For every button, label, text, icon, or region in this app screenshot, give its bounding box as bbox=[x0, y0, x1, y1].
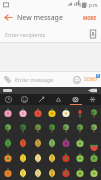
button[interactable]: SEND bbox=[84, 72, 98, 87]
button[interactable]: Emoji bbox=[59, 120, 73, 135]
button[interactable]: Emoji bbox=[30, 135, 45, 150]
button[interactable]: Attach bbox=[0, 72, 15, 87]
button[interactable]: Emoji bbox=[59, 165, 73, 180]
button[interactable]: Emoji bbox=[87, 105, 101, 120]
button[interactable]: Add recipient from contacts bbox=[85, 26, 101, 42]
button[interactable]: Emoji bbox=[73, 165, 87, 180]
staticText: 5:41 p.m. bbox=[79, 2, 99, 8]
button[interactable]: Emoji bbox=[73, 135, 87, 150]
button[interactable]: Emoji bbox=[45, 150, 59, 165]
button[interactable]: Emoji bbox=[59, 105, 73, 120]
button[interactable]: Emoji bbox=[15, 135, 30, 150]
staticText: Enter recipients bbox=[5, 31, 85, 38]
button[interactable]: MORE bbox=[83, 9, 97, 26]
button[interactable]: Emoji bbox=[45, 120, 59, 135]
button[interactable]: Animals bbox=[67, 94, 84, 105]
button[interactable]: Emoji bbox=[0, 105, 15, 120]
button[interactable]: Emoji bbox=[45, 135, 59, 150]
button[interactable]: Emoji bbox=[59, 135, 73, 150]
button[interactable]: Emoji bbox=[73, 120, 87, 135]
button[interactable]: Emoji bbox=[87, 150, 101, 165]
button[interactable]: Emoji bbox=[15, 120, 30, 135]
button[interactable]: Emoji bbox=[0, 150, 15, 165]
button[interactable]: Smileys bbox=[16, 94, 33, 105]
button[interactable]: Emoji bbox=[87, 120, 101, 135]
button[interactable]: Emoji bbox=[30, 120, 45, 135]
button[interactable]: Emoji bbox=[15, 150, 30, 165]
button[interactable]: Emoji bbox=[45, 105, 59, 120]
button[interactable]: Emoji bbox=[73, 105, 87, 120]
button[interactable]: Emoji bbox=[30, 150, 45, 165]
button[interactable]: Recent bbox=[0, 94, 16, 105]
button[interactable]: Nature bbox=[50, 94, 67, 105]
button[interactable]: Emoji bbox=[15, 165, 30, 180]
button[interactable]: Emoji bbox=[69, 72, 84, 87]
staticText: New message bbox=[17, 13, 79, 23]
button[interactable]: Emoji bbox=[0, 165, 15, 180]
button[interactable]: Gestures bbox=[33, 94, 50, 105]
button[interactable]: Emoji bbox=[30, 165, 45, 180]
staticText: 1 bbox=[97, 74, 99, 78]
button[interactable]: Emoji bbox=[59, 150, 73, 165]
button[interactable]: Back bbox=[0, 9, 17, 26]
button[interactable]: Symbols bbox=[84, 94, 101, 105]
button[interactable]: Emoji bbox=[30, 105, 45, 120]
button[interactable]: Emoji bbox=[87, 135, 101, 150]
staticText: MORE bbox=[83, 15, 97, 21]
staticText: SEND bbox=[84, 76, 98, 83]
button[interactable]: Emoji bbox=[45, 165, 59, 180]
button[interactable]: Emoji bbox=[87, 165, 101, 180]
staticText: Enter message bbox=[15, 76, 54, 83]
button[interactable]: Emoji bbox=[73, 150, 87, 165]
button[interactable]: Emoji bbox=[0, 135, 15, 150]
button[interactable]: Emoji bbox=[0, 120, 15, 135]
button[interactable]: Emoji bbox=[15, 105, 30, 120]
